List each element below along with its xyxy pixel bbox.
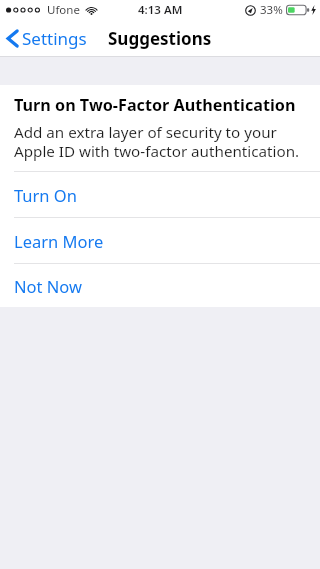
staticText: Turn on Two-Factor Authentication [14,94,296,116]
button[interactable]: Not Now [0,264,320,307]
staticText: Learn More [14,230,104,252]
button[interactable]: Turn On [0,172,320,217]
button[interactable]: Learn More [0,218,320,263]
staticText: Add an extra layer of security to your A… [14,122,308,162]
staticText: Ufone [47,2,80,18]
staticText: Settings [22,27,87,50]
staticText: 33% [260,2,283,18]
staticText: Turn On [14,184,77,206]
staticText: Not Now [14,275,82,297]
staticText: 4:13 AM [138,2,183,18]
staticText: Suggestions [108,27,212,50]
button[interactable]: Settings [0,20,97,57]
